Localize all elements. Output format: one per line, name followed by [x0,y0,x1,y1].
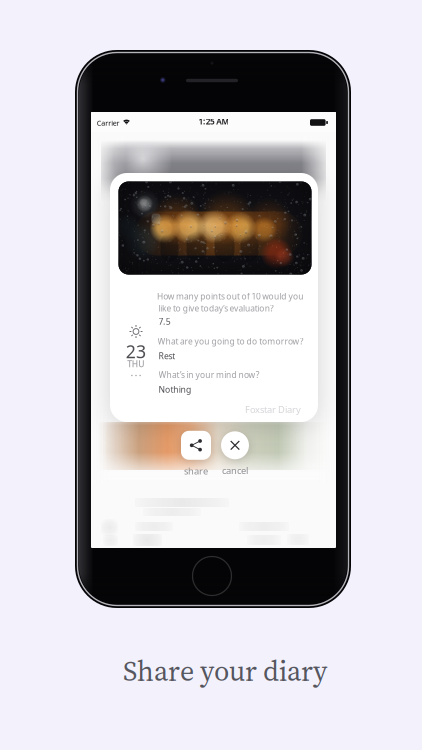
staticText: Carrier [97,117,127,129]
staticText: 7.5 [158,315,171,327]
staticText: cancel [222,464,248,477]
button[interactable]: share [169,430,223,478]
staticText: Share your diary [123,652,327,690]
staticText: Rest [158,350,176,362]
staticText: What are you going to do tomorrow? [157,335,319,347]
staticText: THU [122,355,149,373]
staticText: What’s in your mind now? [158,369,270,381]
staticText: Nothing [158,383,194,395]
staticText: like to give today’s evaluation? [158,302,286,314]
staticText: How many points out of 10 would you [157,290,320,302]
staticText: Foxstar Diary [245,403,301,416]
staticText: share [184,465,208,477]
staticText: 23 [126,340,146,363]
staticText: 1:25 AM [196,115,231,128]
button[interactable]: cancel [208,430,262,478]
